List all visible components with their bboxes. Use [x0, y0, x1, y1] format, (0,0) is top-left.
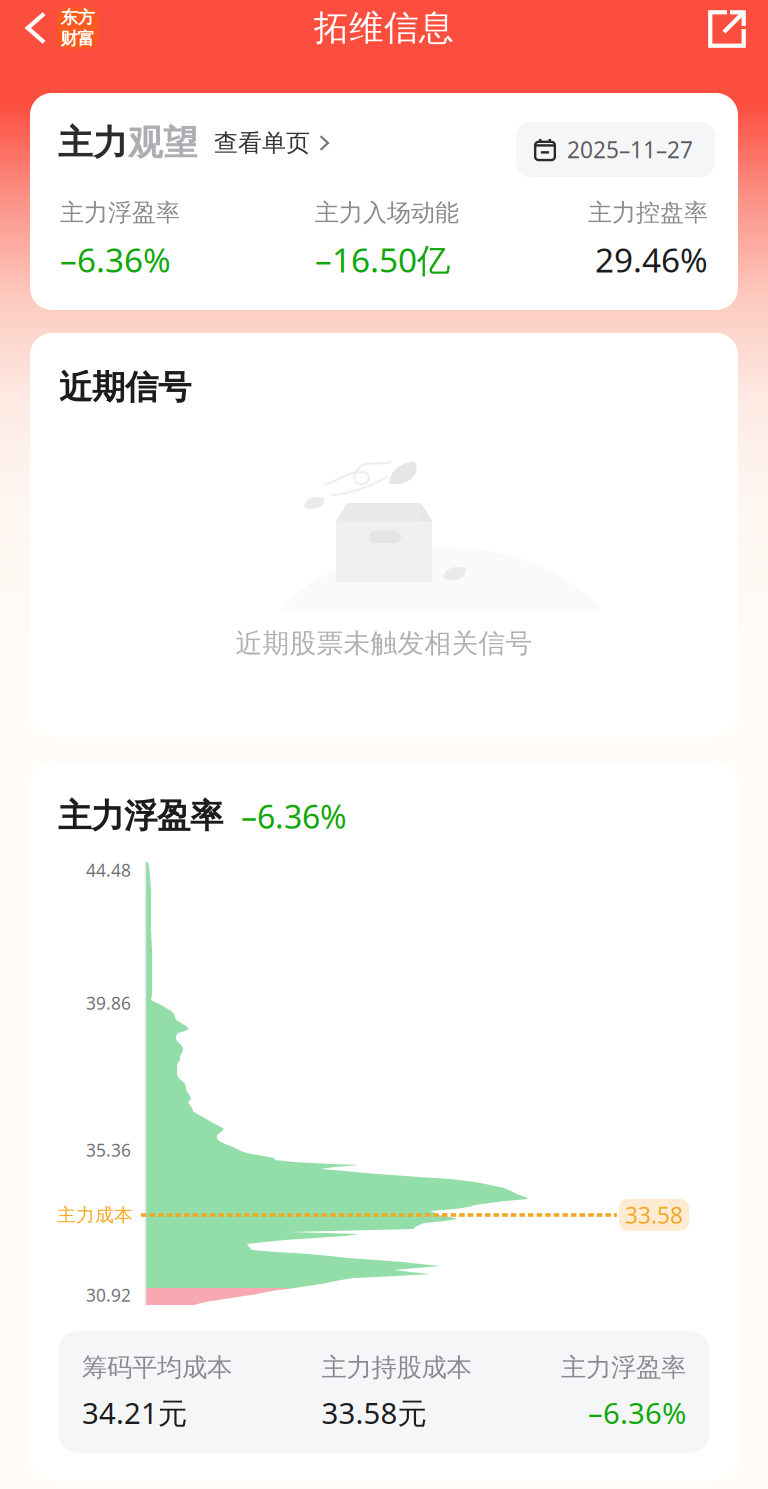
staticText: 东	[60, 7, 77, 28]
staticText: 33.58元	[321, 1393, 426, 1432]
staticText: 拓维信息	[314, 7, 454, 49]
staticText: 主力	[58, 122, 128, 164]
staticText: 33.58	[625, 1200, 683, 1230]
staticText: 观望	[128, 122, 198, 164]
staticText: 方	[77, 7, 94, 28]
staticText: 39.86	[86, 991, 131, 1014]
button[interactable]: 分享	[694, 1, 760, 57]
staticText: 主力入场动能	[315, 198, 459, 227]
staticText: –6.36%	[60, 237, 171, 282]
staticText: –6.36%	[588, 1393, 686, 1432]
button[interactable]: 查看单页	[198, 120, 334, 166]
staticText: 主力浮盈率	[60, 198, 180, 227]
staticText: 查看单页	[214, 128, 310, 158]
staticText: 2025–11–27	[567, 134, 693, 164]
staticText: 近期股票未触发相关信号	[235, 627, 532, 660]
staticText: 35.36	[86, 1138, 131, 1161]
staticText: 财	[60, 28, 77, 49]
staticText: 主力浮盈率	[58, 796, 223, 837]
staticText: 30.92	[86, 1283, 131, 1306]
staticText: 主力成本	[57, 1203, 133, 1226]
staticText: 筹码平均成本	[82, 1352, 232, 1383]
staticText: –16.50亿	[315, 237, 450, 282]
staticText: 主力控盘率	[588, 198, 708, 227]
staticText: 近期信号	[59, 367, 191, 408]
staticText: 富	[77, 28, 94, 49]
staticText: 主力持股成本	[321, 1352, 471, 1383]
staticText: 主力浮盈率	[561, 1352, 686, 1383]
staticText: 34.21元	[82, 1393, 187, 1432]
staticText: 44.48	[86, 858, 131, 881]
staticText: –6.36%	[241, 795, 347, 837]
button[interactable]: 返回	[0, 0, 112, 56]
button[interactable]: 2025–11–27	[516, 122, 715, 177]
staticText: 29.46%	[595, 237, 708, 282]
